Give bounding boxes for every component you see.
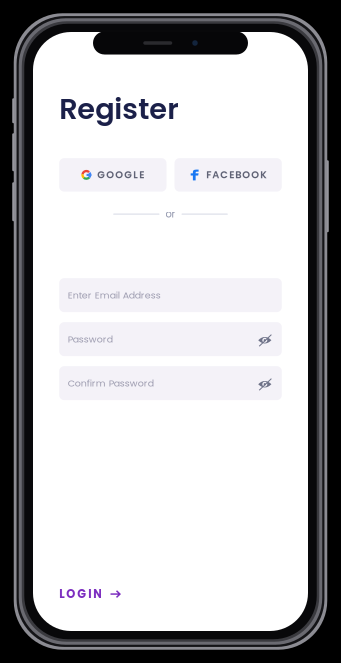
button[interactable]: Show password [258,377,272,389]
button[interactable]: F A C E B O O K [174,158,282,192]
staticText: Password [68,332,113,346]
staticText: Register [59,89,179,129]
staticText: Enter Email Address [68,288,161,302]
staticText: F A C E B O O K [206,168,267,182]
staticText: L O G I N [59,586,102,602]
button[interactable]: L O G I N [59,586,120,602]
staticText: or [165,207,175,221]
staticText: G O O G L E [97,168,144,182]
button[interactable]: Show password [258,333,272,345]
button[interactable]: G O O G L E [59,158,166,192]
staticText: Confirm Password [68,376,154,390]
